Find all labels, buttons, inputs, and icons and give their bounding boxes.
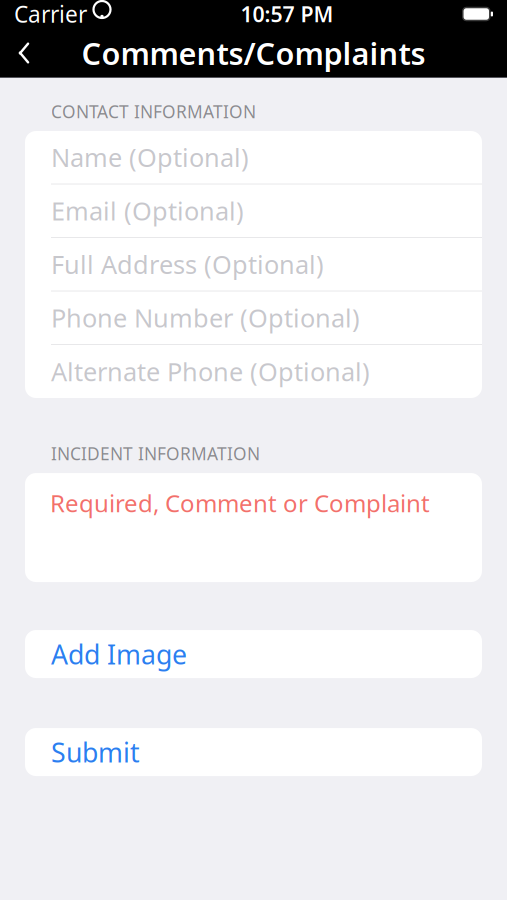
button[interactable]: Add Image bbox=[25, 630, 482, 678]
staticText: INCIDENT INFORMATION bbox=[51, 442, 260, 465]
button[interactable]: Full Address (Optional) bbox=[25, 238, 482, 291]
staticText: Required, Comment or Complaint bbox=[50, 487, 430, 519]
button[interactable]: Phone Number (Optional) bbox=[25, 291, 482, 345]
staticText: 10:57 PM bbox=[240, 0, 333, 28]
staticText: Add Image bbox=[51, 636, 187, 672]
staticText: CONTACT INFORMATION bbox=[51, 100, 256, 123]
button[interactable]: Alternate Phone (Optional) bbox=[25, 345, 482, 398]
staticText: Alternate Phone (Optional) bbox=[51, 355, 370, 388]
button[interactable]: Name (Optional) bbox=[25, 131, 482, 184]
staticText: Name (Optional) bbox=[51, 140, 249, 174]
staticText: Full Address (Optional) bbox=[51, 247, 324, 281]
staticText: Phone Number (Optional) bbox=[51, 301, 360, 334]
button[interactable]: Email (Optional) bbox=[25, 184, 482, 238]
staticText: Submit bbox=[51, 734, 140, 770]
button[interactable]: Submit bbox=[25, 728, 482, 776]
staticText: Carrier bbox=[14, 0, 87, 29]
button[interactable]: Required, Comment or Complaint bbox=[25, 473, 482, 582]
staticText: Email (Optional) bbox=[51, 194, 244, 227]
button[interactable]: Back bbox=[0, 28, 48, 78]
staticText: Comments/Complaints bbox=[81, 33, 425, 73]
